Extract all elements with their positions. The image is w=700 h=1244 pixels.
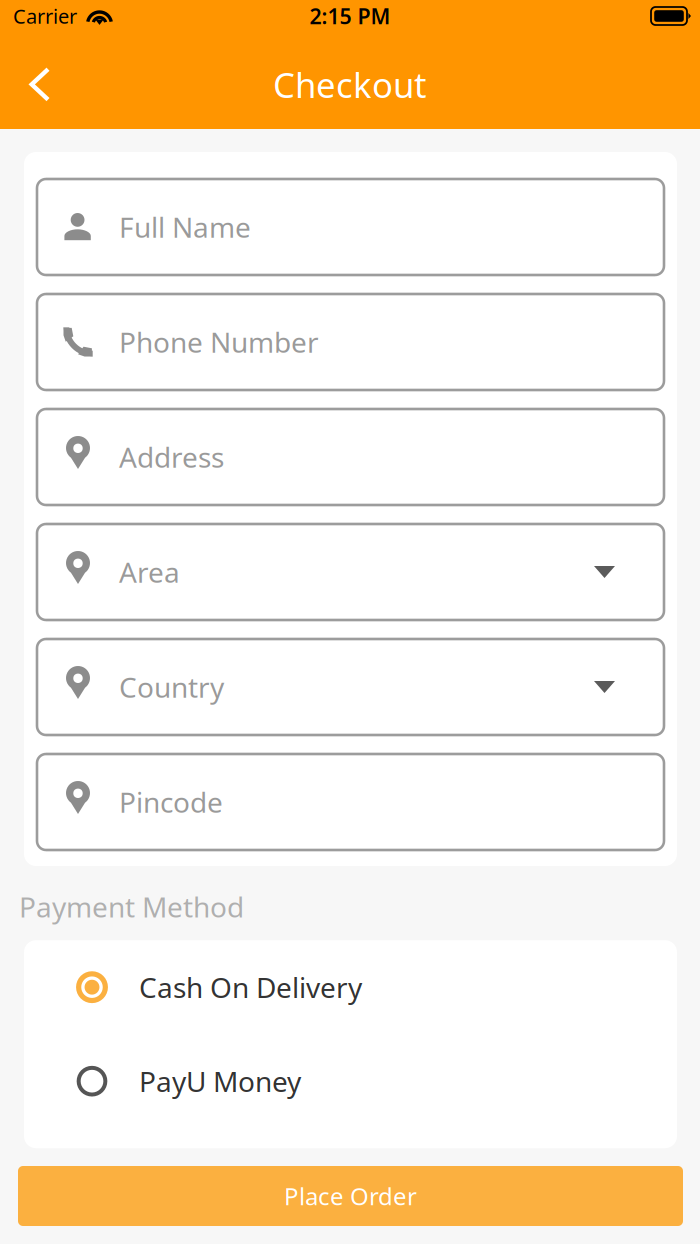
- button[interactable]: Place Order: [18, 1166, 683, 1226]
- staticText: Full Name: [119, 208, 251, 246]
- staticText: Place Order: [284, 1180, 417, 1212]
- staticText: Address: [119, 438, 224, 476]
- button[interactable]: Area: [37, 524, 664, 620]
- button[interactable]: Phone Number: [37, 294, 664, 390]
- staticText: 2:15 PM: [309, 2, 390, 30]
- staticText: Area: [119, 553, 180, 591]
- staticText: Checkout: [273, 61, 427, 107]
- button[interactable]: Full Name: [37, 179, 664, 275]
- staticText: Country: [119, 668, 224, 706]
- button[interactable]: Address: [37, 409, 664, 505]
- staticText: Phone Number: [119, 323, 319, 361]
- button[interactable]: Pincode: [37, 754, 664, 850]
- button[interactable]: PayU Money: [24, 1034, 677, 1128]
- button[interactable]: Cash On Delivery: [24, 940, 677, 1034]
- staticText: Carrier: [13, 3, 77, 29]
- staticText: Payment Method: [19, 888, 244, 925]
- staticText: Cash On Delivery: [139, 969, 362, 1006]
- staticText: PayU Money: [139, 1063, 301, 1100]
- staticText: Pincode: [119, 783, 223, 821]
- button[interactable]: Country: [37, 639, 664, 735]
- button[interactable]: Back: [12, 56, 66, 112]
